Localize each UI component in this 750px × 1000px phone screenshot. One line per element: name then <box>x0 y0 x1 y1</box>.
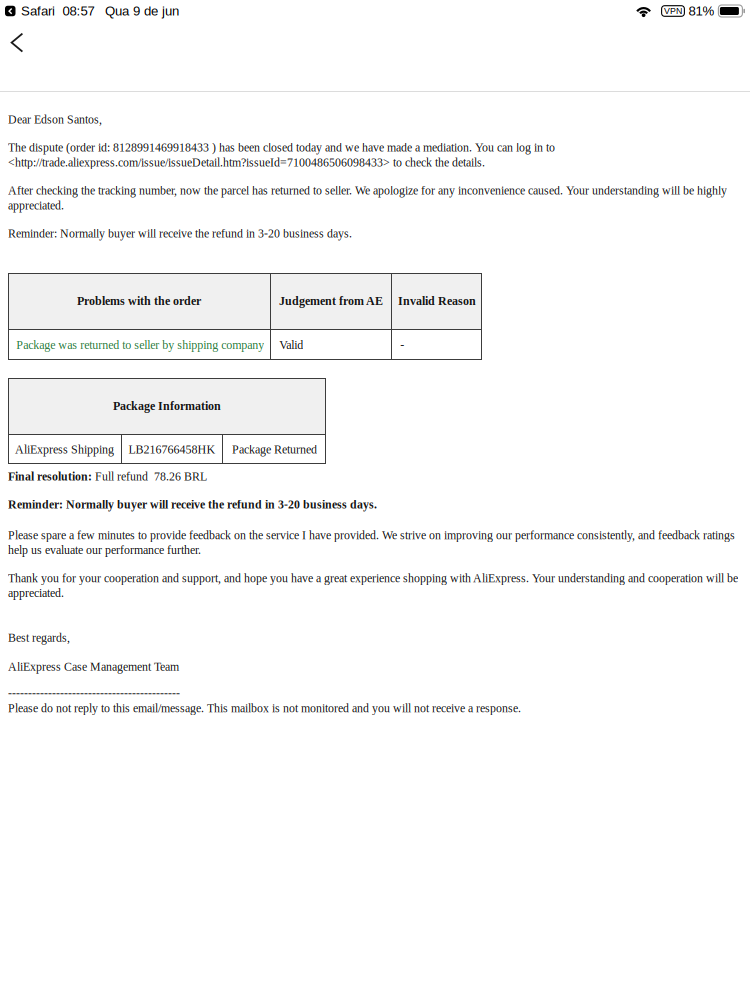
staticText: Invalid Reason <box>398 294 476 308</box>
staticText: Please do not reply to this email/messag… <box>8 702 521 715</box>
staticText: Valid <box>279 338 303 352</box>
staticText: Final resolution: <box>8 470 95 483</box>
staticText: <http://trade.aliexpress.com/issue/issue… <box>8 156 485 169</box>
staticText: Package Information <box>113 399 221 413</box>
button[interactable]: Back <box>1 22 33 91</box>
staticText: Please spare a few minutes to provide fe… <box>8 529 735 542</box>
staticText: After checking the tracking number, now … <box>8 184 727 197</box>
staticText: - <box>400 338 404 352</box>
staticText: Dear Edson Santos, <box>8 113 102 126</box>
staticText: Problems with the order <box>77 294 201 308</box>
staticText: Best regards, <box>8 631 70 644</box>
staticText: 81% <box>688 4 714 18</box>
staticText: Safari <box>21 4 55 18</box>
staticText: help us evaluate our performance further… <box>8 543 201 557</box>
staticText: Judgement from AE <box>279 294 383 308</box>
staticText: Reminder: Normally buyer will receive th… <box>8 498 377 511</box>
staticText: appreciated. <box>8 199 64 212</box>
staticText: Package Returned <box>232 443 317 456</box>
staticText: VPN <box>664 6 682 16</box>
staticText: Package was returned to seller by shippi… <box>16 338 264 352</box>
staticText: Full refund 78.26 BRL <box>95 470 207 483</box>
staticText: The dispute (order id: 8128991469918433 … <box>8 141 555 154</box>
staticText: ----------------------------------------… <box>8 687 180 700</box>
staticText: LB216766458HK <box>128 443 215 456</box>
staticText: Qua 9 de jun <box>105 4 179 18</box>
staticText: appreciated. <box>8 586 64 600</box>
staticText: Thank you for your cooperation and suppo… <box>8 572 738 585</box>
staticText: AliExpress Shipping <box>15 443 114 456</box>
button[interactable]: Back to Safari <box>5 4 55 18</box>
staticText: 08:57 <box>62 4 94 18</box>
staticText: Reminder: Normally buyer will receive th… <box>8 227 352 240</box>
staticText: AliExpress Case Management Team <box>8 660 179 673</box>
